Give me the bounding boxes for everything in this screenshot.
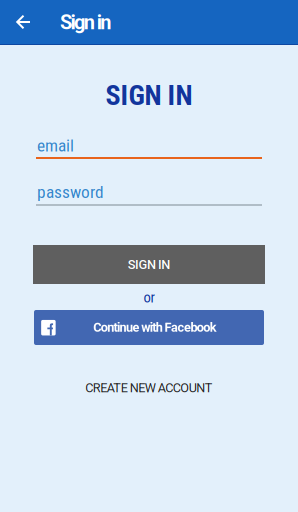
- button[interactable]: Back: [1, 0, 45, 44]
- button[interactable]: CREATE NEW ACCOUNT: [49, 373, 249, 403]
- button[interactable]: Continue with Facebook: [34, 310, 264, 345]
- staticText: CREATE NEW ACCOUNT: [85, 381, 213, 395]
- staticText: email: [37, 135, 74, 156]
- staticText: or: [143, 289, 154, 306]
- staticText: Continue with Facebook: [93, 320, 217, 335]
- staticText: password: [37, 182, 104, 202]
- button[interactable]: SIGN IN: [33, 245, 265, 284]
- staticText: Sign in: [60, 11, 111, 34]
- staticText: SIGN IN: [128, 257, 170, 272]
- staticText: SIGN IN: [105, 79, 192, 112]
